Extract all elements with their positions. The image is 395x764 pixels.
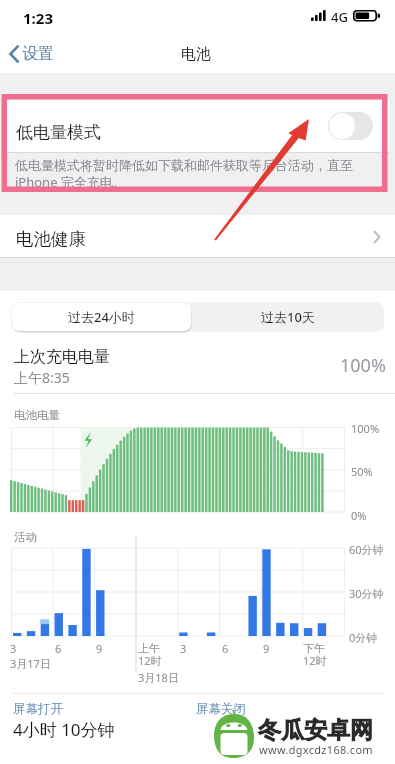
staticText: 3月18日	[138, 670, 179, 685]
other: More	[373, 230, 381, 244]
button[interactable]: 过去24小时	[12, 303, 191, 331]
staticText: 设置	[22, 44, 54, 64]
staticText: 低电量模式	[16, 122, 101, 143]
staticText: 9	[263, 641, 270, 656]
staticText: 上午8:35	[14, 368, 70, 387]
staticText: 电池	[181, 45, 211, 64]
staticText: 3	[180, 641, 187, 656]
staticText: 屏幕关闭	[196, 701, 246, 717]
staticText: www.dgxcdz168.com	[259, 742, 373, 757]
staticText: 电池电量	[14, 408, 60, 422]
button[interactable]: 电池健康	[0, 215, 395, 258]
staticText: 上次充电电量	[14, 347, 110, 367]
staticText: 冬瓜安卓网	[258, 716, 373, 745]
staticText: 活动	[14, 530, 37, 544]
staticText: 3月17日	[10, 656, 51, 671]
staticText: 100%	[351, 421, 380, 436]
button[interactable]: 设置	[0, 44, 68, 64]
staticText: 0%	[351, 508, 367, 523]
staticText: 60分钟	[349, 542, 384, 557]
staticText: 100%	[340, 353, 386, 378]
staticText: 6	[55, 641, 62, 656]
staticText: 低电量模式将暂时降低如下载和邮件获取等后台活动，直至 iPhone 完全充电。	[15, 157, 353, 191]
staticText: 屏幕打开	[13, 701, 63, 717]
staticText: 上午 12时	[138, 641, 162, 668]
button[interactable]: 低电量模式	[5, 100, 390, 152]
staticText: 电池健康	[16, 228, 86, 250]
staticText: 过去24小时	[68, 308, 135, 326]
staticText: 4G	[331, 8, 348, 26]
staticText: 3	[10, 641, 17, 656]
button[interactable]: Low Power Mode toggle	[328, 112, 373, 140]
staticText: 6	[222, 641, 229, 656]
button[interactable]: 过去10天	[195, 303, 381, 331]
staticText: 下午 12时	[303, 641, 327, 668]
staticText: 9	[96, 641, 103, 656]
staticText: 过去10天	[261, 308, 315, 326]
staticText: 50%	[351, 464, 373, 479]
staticText: 4小时 10分钟	[13, 718, 115, 741]
staticText: 0分钟	[349, 630, 378, 645]
staticText: 30分钟	[349, 586, 384, 601]
staticText: 1:23	[23, 8, 53, 28]
